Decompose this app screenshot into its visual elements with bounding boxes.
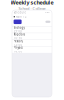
staticText: Mon 12 (16, 15, 27, 18)
button[interactable]: Physics (12, 46, 52, 53)
button[interactable]: Biology (12, 26, 52, 33)
button[interactable]: History (12, 39, 52, 46)
staticText: 12:00 (14, 43, 23, 47)
staticText: Algebra (14, 33, 25, 36)
staticText: History (14, 39, 23, 43)
staticText: 10:30 (14, 36, 23, 40)
staticText: 14:00 (14, 50, 23, 53)
staticText: Weekly schedule (10, 0, 53, 6)
staticText: Physics (14, 46, 23, 49)
button[interactable]: Algebra (12, 33, 52, 39)
staticText: Biology (14, 26, 25, 29)
staticText: School · College (18, 6, 45, 11)
button[interactable]: More (44, 10, 50, 14)
staticText: 09:00 (14, 30, 23, 33)
staticText: Schedule (14, 11, 27, 14)
